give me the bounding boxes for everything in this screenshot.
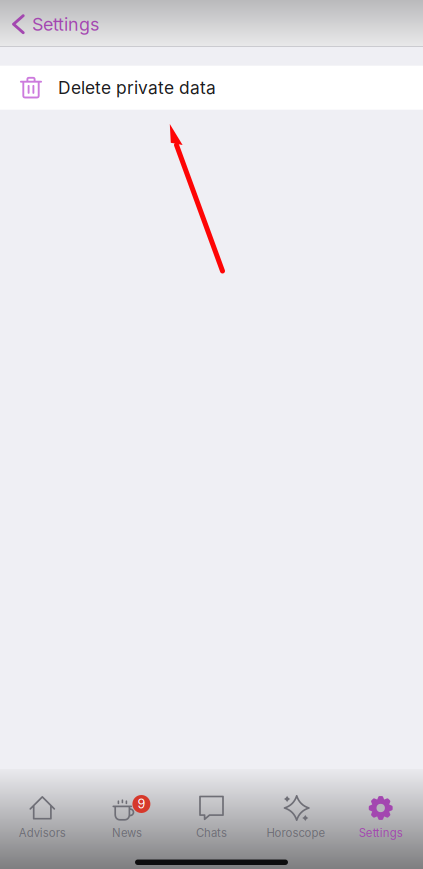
button[interactable]: Settings — [0, 7, 109, 46]
button[interactable]: Settings — [338, 769, 423, 869]
button[interactable]: 9 — [85, 769, 169, 869]
staticText: Chats — [196, 826, 227, 840]
button[interactable]: Horoscope — [254, 769, 338, 869]
staticText: Settings — [359, 826, 403, 840]
staticText: Horoscope — [267, 826, 326, 840]
button[interactable]: Delete private data — [0, 66, 423, 110]
button[interactable]: Advisors — [0, 769, 85, 869]
staticText: Delete private data — [58, 77, 216, 98]
staticText: Settings — [32, 13, 99, 35]
button[interactable]: Chats — [169, 769, 254, 869]
staticText: 9 — [137, 796, 145, 812]
staticText: News — [112, 826, 142, 840]
staticText: Advisors — [19, 826, 66, 840]
